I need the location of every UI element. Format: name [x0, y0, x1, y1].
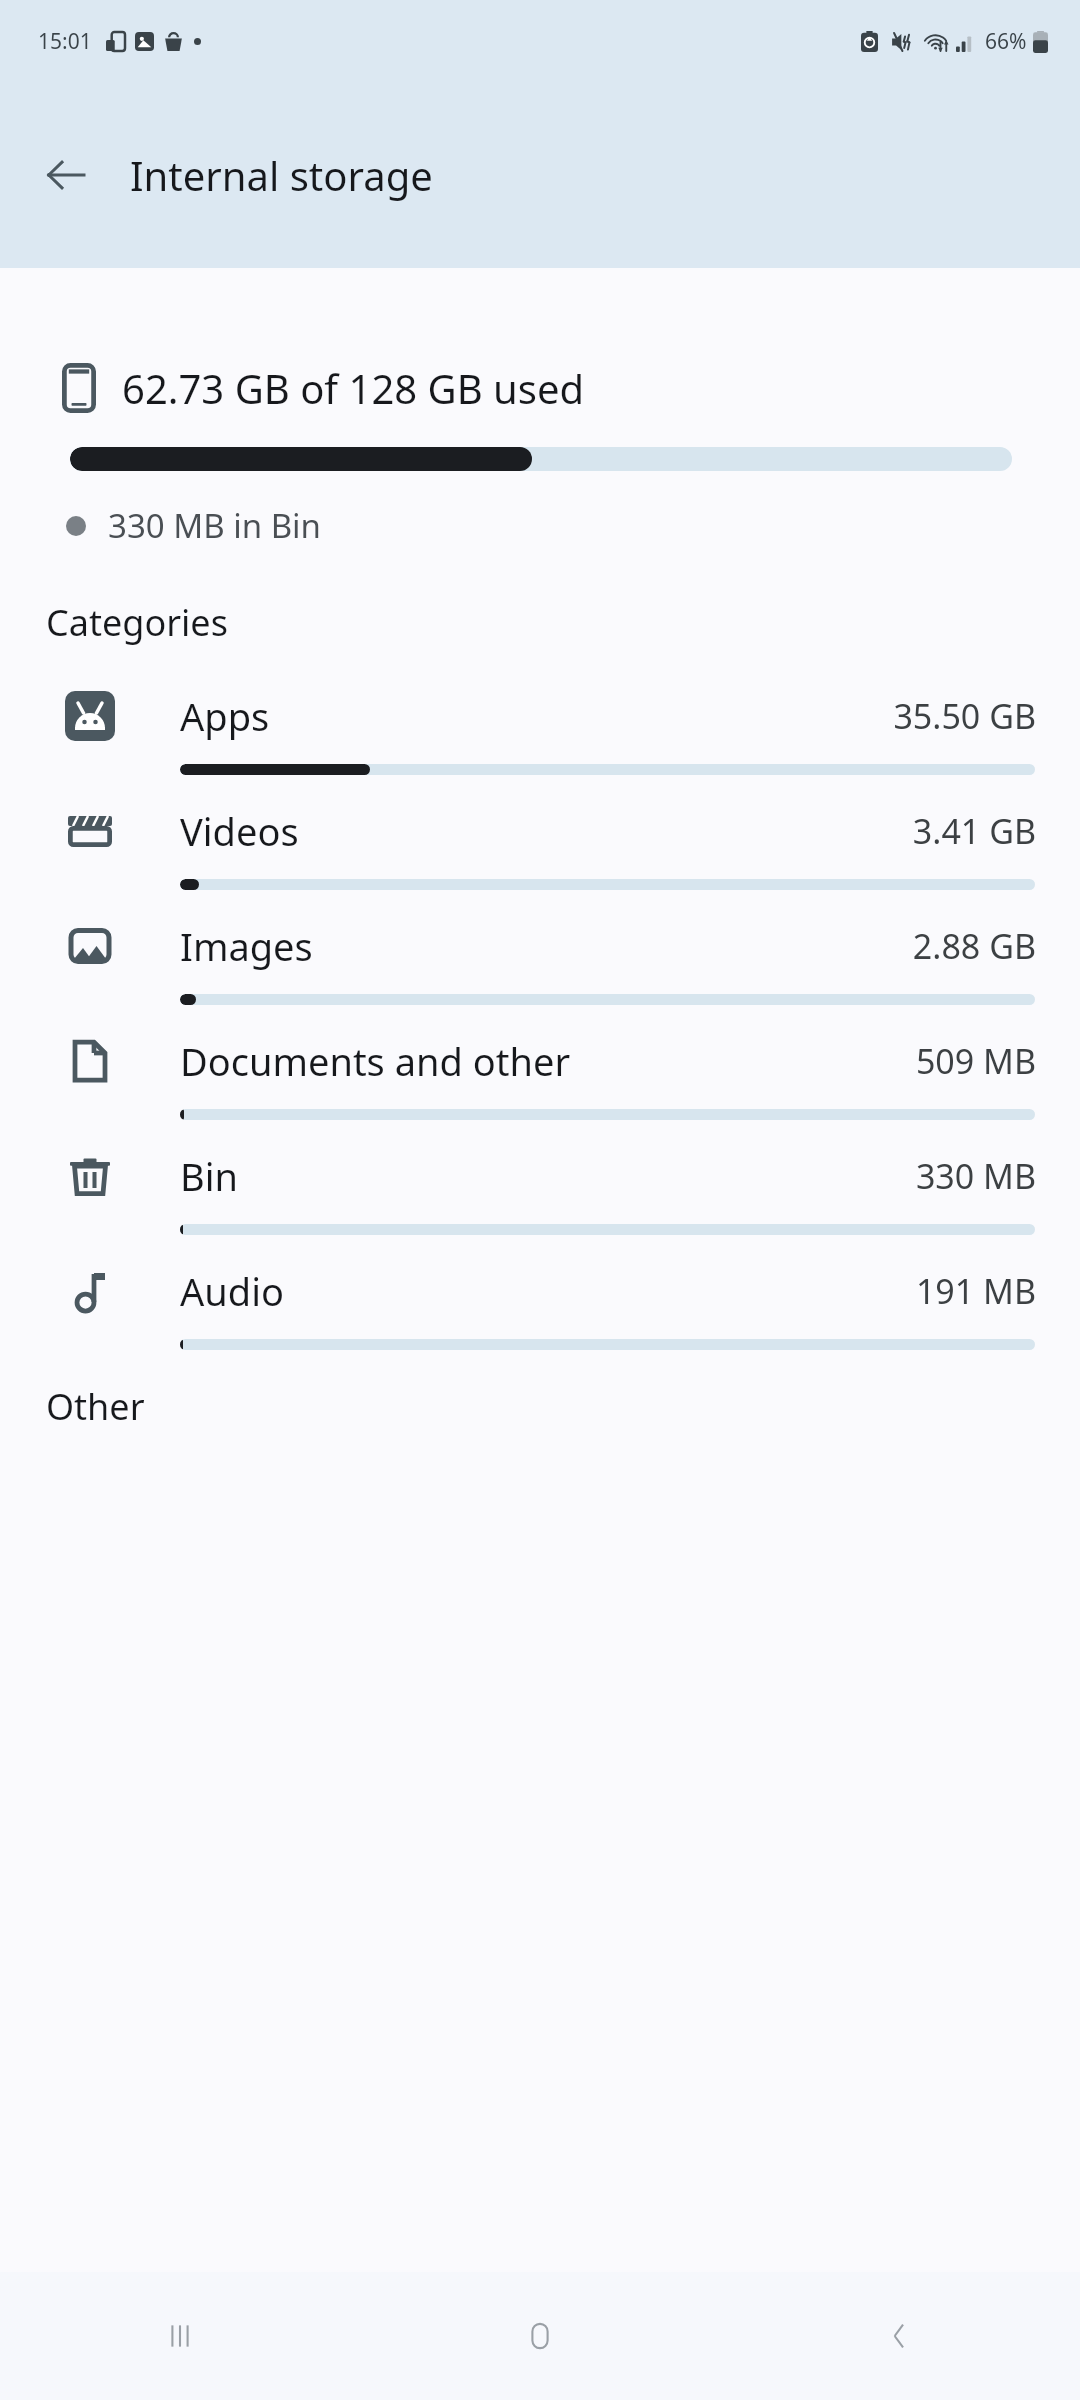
staticText: Other [46, 1382, 145, 1431]
button[interactable]: Audio [0, 1247, 1080, 1362]
staticText: Documents and other [180, 1035, 915, 1087]
staticText: 62.73 GB of 128 GB used [122, 361, 585, 415]
staticText: Videos [180, 805, 912, 857]
staticText: Images [180, 920, 912, 972]
staticText: 2.88 GB [912, 923, 1036, 969]
staticText: 509 MB [915, 1038, 1036, 1084]
staticText: 15:01 [38, 27, 92, 56]
staticText: 191 MB [915, 1268, 1036, 1314]
button[interactable]: Home [360, 2272, 720, 2400]
staticText: Internal storage [130, 148, 433, 202]
staticText: 330 MB [915, 1153, 1036, 1199]
staticText: Categories [46, 598, 228, 647]
button[interactable]: Back [30, 139, 102, 211]
staticText: Audio [180, 1265, 915, 1317]
staticText: 35.50 GB [893, 693, 1036, 739]
button[interactable]: Bin [0, 1132, 1080, 1247]
staticText: Apps [180, 690, 893, 742]
button[interactable]: Documents and other [0, 1017, 1080, 1132]
button[interactable]: Images [0, 902, 1080, 1017]
button[interactable]: Videos [0, 787, 1080, 902]
staticText: 66% [985, 27, 1027, 56]
staticText: 330 MB in Bin [108, 503, 322, 548]
staticText: 3.41 GB [912, 808, 1036, 854]
button[interactable]: Apps [0, 672, 1080, 787]
staticText: Bin [180, 1150, 915, 1202]
button[interactable]: Recent apps [0, 2272, 360, 2400]
